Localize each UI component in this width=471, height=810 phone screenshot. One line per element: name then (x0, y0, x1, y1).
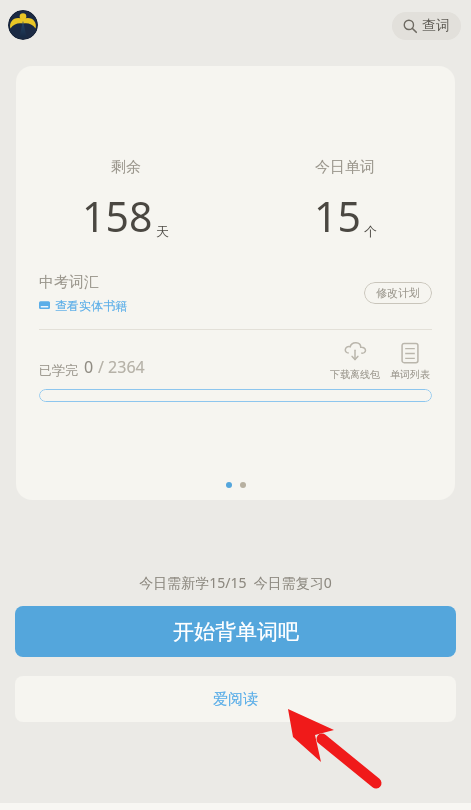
staticText: 0 (84, 356, 94, 378)
staticText: 单词列表 (390, 368, 430, 381)
button[interactable]: 爱阅读 (15, 676, 456, 722)
staticText: 已学完 (39, 362, 78, 378)
staticText: 中考词汇 (39, 273, 99, 292)
staticText: 个 (364, 223, 377, 239)
button[interactable]: 查词 (392, 12, 461, 40)
staticText: 爱阅读 (213, 690, 258, 709)
button[interactable]: 下载离线包 (328, 342, 382, 381)
button[interactable]: 开始背单词吧 (15, 606, 456, 657)
staticText: 查词 (422, 17, 450, 35)
staticText: 下载离线包 (330, 368, 380, 381)
staticText: 158 (82, 188, 153, 244)
staticText: 15 (314, 188, 361, 244)
staticText: / 2364 (98, 356, 145, 378)
button[interactable]: 查看实体书籍 (39, 298, 127, 313)
staticText: 开始背单词吧 (173, 619, 299, 645)
staticText: 今日需新学15/15 今日需复习0 (0, 573, 471, 592)
staticText: 查看实体书籍 (55, 298, 127, 313)
button[interactable]: 单词列表 (388, 342, 432, 381)
button[interactable]: Profile (8, 10, 38, 40)
button[interactable]: 修改计划 (364, 282, 432, 304)
button[interactable]: 剩余 (16, 66, 455, 500)
staticText: 修改计划 (376, 286, 420, 300)
staticText: 剩余 (111, 158, 141, 177)
staticText: 天 (156, 223, 169, 239)
staticText: 今日单词 (315, 158, 375, 177)
